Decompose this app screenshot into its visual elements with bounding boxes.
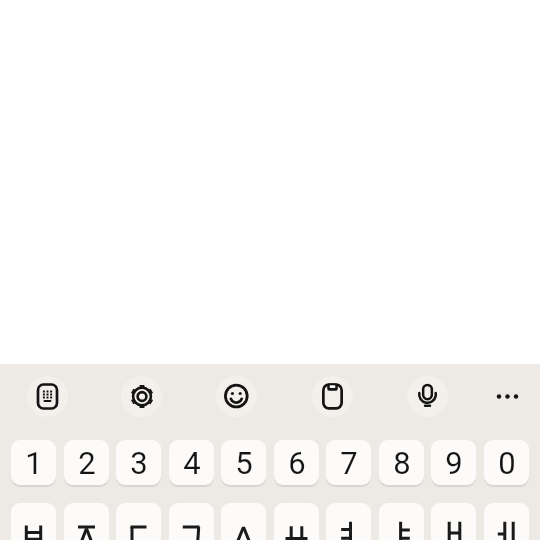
button[interactable]: 7: [326, 440, 371, 485]
staticText: 4: [183, 445, 201, 481]
button[interactable]: [221, 503, 266, 540]
button[interactable]: [407, 376, 448, 417]
button[interactable]: [484, 503, 529, 540]
button[interactable]: [326, 503, 371, 540]
button[interactable]: 9: [431, 440, 476, 485]
button[interactable]: [431, 503, 476, 540]
button[interactable]: 1: [11, 440, 56, 485]
button[interactable]: [379, 503, 424, 540]
button[interactable]: 0: [484, 440, 529, 485]
button[interactable]: [116, 503, 161, 540]
button[interactable]: [216, 376, 257, 417]
staticText: 5: [235, 445, 253, 481]
button[interactable]: [11, 503, 56, 540]
button[interactable]: 8: [379, 440, 424, 485]
staticText: 6: [288, 445, 306, 481]
button[interactable]: [274, 503, 319, 540]
staticText: 9: [445, 445, 463, 481]
button[interactable]: [312, 376, 353, 417]
staticText: 2: [78, 445, 96, 481]
button[interactable]: [27, 376, 68, 417]
staticText: 8: [393, 445, 411, 481]
staticText: 7: [340, 445, 358, 481]
staticText: 0: [498, 445, 516, 481]
button[interactable]: 2: [64, 440, 109, 485]
button[interactable]: 5: [221, 440, 266, 485]
button[interactable]: 3: [116, 440, 161, 485]
staticText: 1: [25, 445, 43, 481]
button[interactable]: 6: [274, 440, 319, 485]
button[interactable]: 4: [169, 440, 214, 485]
button[interactable]: [121, 376, 162, 417]
button[interactable]: [169, 503, 214, 540]
button[interactable]: [64, 503, 109, 540]
staticText: 3: [130, 445, 148, 481]
button[interactable]: [487, 376, 528, 417]
